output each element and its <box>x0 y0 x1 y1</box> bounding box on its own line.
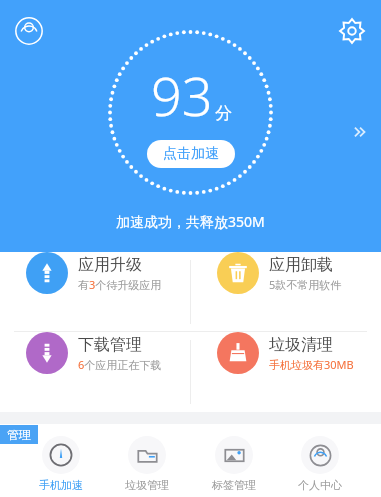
button[interactable]: 应用卸载 <box>191 252 381 294</box>
button[interactable]: More <box>347 118 375 146</box>
button[interactable]: 垃圾管理 <box>121 436 173 492</box>
staticText: 分 <box>215 103 232 124</box>
staticText: 手机垃圾有30MB <box>269 357 354 372</box>
button[interactable]: 点击加速 <box>147 140 235 168</box>
staticText: 标签管理 <box>212 478 256 492</box>
staticText: 6个应用正在下载 <box>78 357 162 372</box>
staticText: 点击加速 <box>163 145 219 163</box>
staticText: 应用卸载 <box>269 255 333 275</box>
staticText: 垃圾清理 <box>269 335 333 355</box>
button[interactable]: 下载管理 <box>0 332 190 374</box>
staticText: 93 <box>151 58 213 132</box>
staticText: 下载管理 <box>78 335 142 355</box>
button[interactable]: 个人中心 <box>294 436 346 492</box>
staticText: 5款不常用软件 <box>269 277 342 292</box>
staticText: 管理 <box>7 427 31 442</box>
staticText: 加速成功，共释放350M <box>116 212 265 231</box>
staticText: 个人中心 <box>298 478 342 492</box>
button[interactable]: Profile <box>12 14 46 48</box>
staticText: 手机加速 <box>39 478 83 492</box>
button[interactable]: 应用升级 <box>0 252 190 294</box>
button[interactable]: 手机加速 <box>35 436 87 492</box>
button[interactable]: 垃圾清理 <box>191 332 381 374</box>
button[interactable]: 标签管理 <box>208 436 260 492</box>
button[interactable]: 管理 <box>0 425 38 444</box>
staticText: 有3个待升级应用 <box>78 277 162 292</box>
staticText: 垃圾管理 <box>125 478 169 492</box>
button[interactable]: Settings <box>335 14 369 48</box>
staticText: 应用升级 <box>78 255 142 275</box>
